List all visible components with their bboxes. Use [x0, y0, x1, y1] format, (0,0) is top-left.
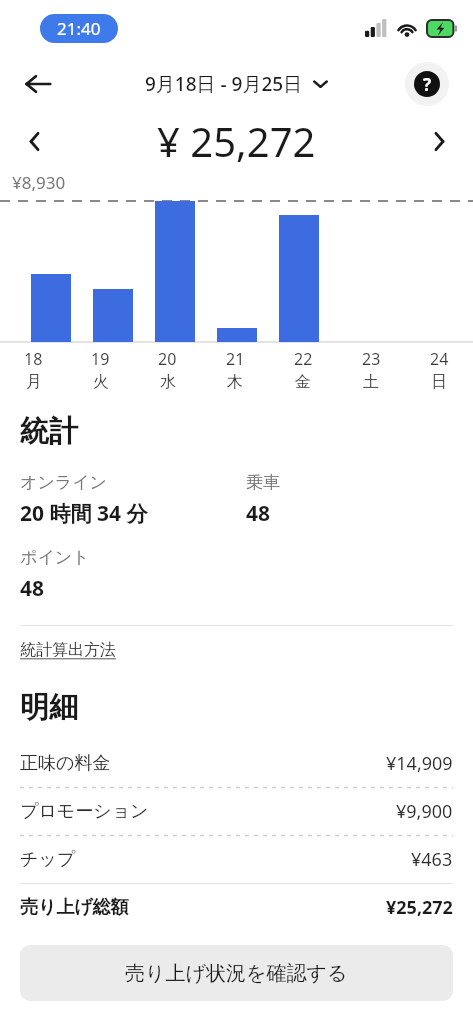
staticText: ポイント [20, 547, 90, 568]
staticText: ¥ 25,272 [157, 114, 316, 168]
staticText: プロモーション [20, 800, 396, 823]
button[interactable]: 統計算出方法 [20, 640, 116, 660]
staticText: ¥8,930 [12, 171, 66, 194]
staticText: ? [423, 73, 432, 96]
staticText: 23 [362, 348, 381, 370]
staticText: 月 [26, 372, 42, 392]
staticText: 土 [363, 372, 379, 392]
staticText: 統計算出方法 [20, 640, 116, 660]
staticText: 明細 [20, 689, 78, 726]
button[interactable]: Previous week [12, 119, 56, 163]
staticText: 水 [160, 372, 176, 392]
staticText: 売り上げ状況を確認する [125, 961, 348, 986]
button[interactable]: 売り上げ状況を確認する [20, 945, 453, 1001]
staticText: 木 [227, 372, 243, 392]
staticText: ¥9,900 [396, 799, 453, 824]
staticText: 統計 [20, 413, 78, 450]
staticText: 日 [431, 372, 447, 392]
staticText: 24 [430, 348, 449, 370]
staticText: 18 [24, 348, 43, 370]
staticText: 9月18日 - 9月25日 [145, 71, 303, 97]
staticText: 48 [20, 574, 45, 603]
staticText: ¥14,909 [386, 751, 453, 776]
staticText: 20 [158, 348, 177, 370]
staticText: ¥25,272 [386, 895, 453, 920]
staticText: 20 時間 34 分 [20, 499, 148, 528]
staticText: 火 [93, 372, 109, 392]
staticText: 正味の料金 [20, 752, 386, 775]
staticText: 22 [294, 348, 313, 370]
staticText: 21 [226, 348, 245, 370]
button[interactable]: 9月18日 - 9月25日 [145, 71, 328, 97]
staticText: 乗車 [246, 472, 280, 493]
staticText: 19 [91, 348, 110, 370]
button[interactable]: Help [405, 62, 449, 106]
staticText: 売り上げ総額 [20, 896, 386, 919]
staticText: 金 [295, 372, 311, 392]
staticText: 21:40 [57, 17, 101, 40]
staticText: オンライン [20, 472, 107, 493]
button[interactable]: Next week [417, 119, 461, 163]
staticText: チップ [20, 848, 411, 871]
button[interactable]: Back [14, 60, 62, 108]
staticText: 48 [246, 499, 271, 528]
staticText: ¥463 [411, 847, 453, 872]
